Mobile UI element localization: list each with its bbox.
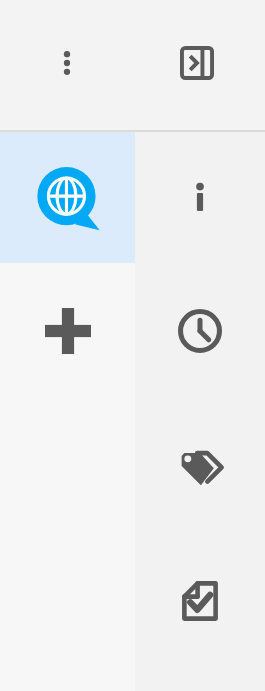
button[interactable]: Add xyxy=(0,263,135,398)
button[interactable]: Info xyxy=(135,132,265,263)
button[interactable]: Tags xyxy=(135,398,265,533)
button[interactable]: Notes xyxy=(135,533,265,668)
button[interactable]: Toggle panel xyxy=(165,31,229,95)
button[interactable]: Translate xyxy=(0,132,135,263)
button[interactable]: More options xyxy=(35,31,99,95)
button[interactable]: History xyxy=(135,263,265,398)
